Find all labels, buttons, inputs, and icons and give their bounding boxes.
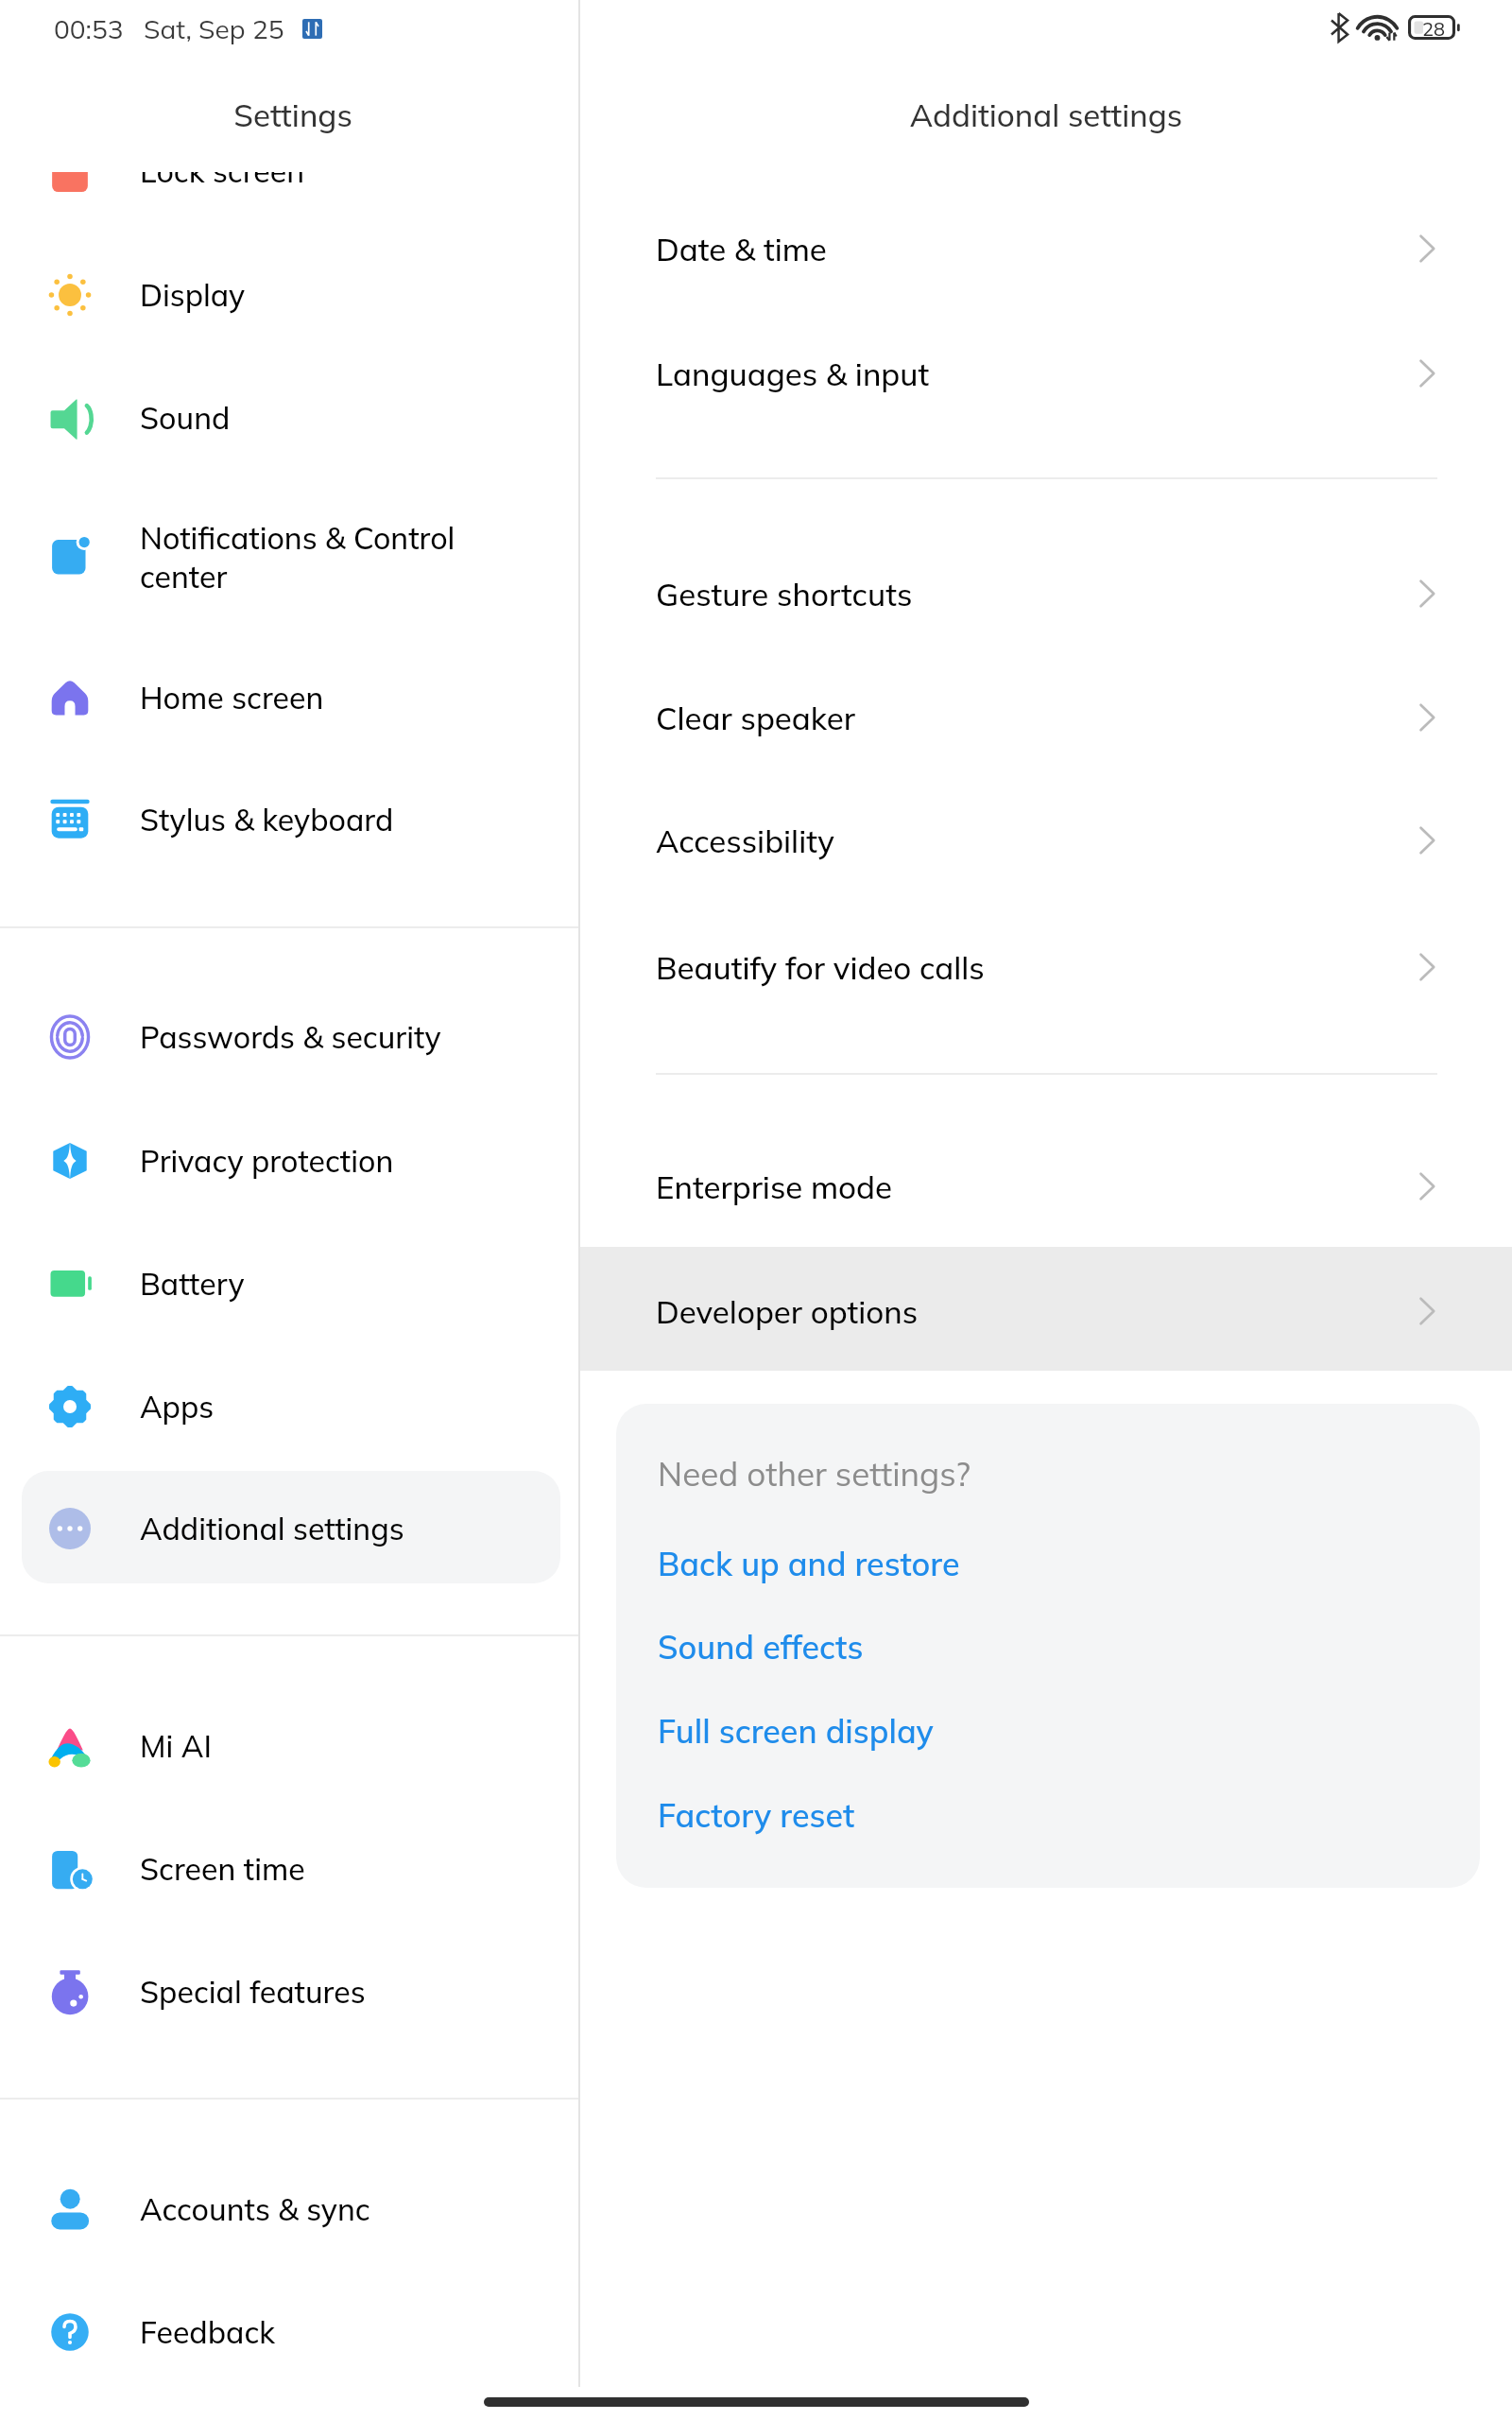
staticText: Sound	[140, 399, 231, 437]
staticText: Screen time	[140, 1850, 305, 1888]
button[interactable]: Clear speaker	[580, 658, 1512, 777]
staticText: Back up and restore	[658, 1544, 960, 1584]
staticText: Apps	[140, 1388, 215, 1426]
button[interactable]: Enterprise mode	[580, 1127, 1512, 1246]
button[interactable]: Beautify for video calls	[580, 907, 1512, 1027]
button[interactable]: Accessibility	[580, 781, 1512, 900]
staticText: 28	[1422, 17, 1445, 41]
button[interactable]: Apps	[0, 1351, 578, 1462]
button[interactable]: Stylus & keyboard	[0, 764, 578, 875]
staticText: Languages & input	[656, 354, 930, 393]
staticText: Passwords & security	[140, 1018, 441, 1056]
button[interactable]: Sound effects	[616, 1613, 1480, 1681]
staticText: Factory reset	[658, 1795, 855, 1836]
staticText: Enterprise mode	[656, 1167, 893, 1206]
staticText: Clear speaker	[656, 699, 855, 737]
button[interactable]: Additional settings	[0, 1473, 578, 1584]
staticText: Accessibility	[656, 821, 834, 860]
staticText: Notifications & Control center	[140, 519, 455, 596]
button[interactable]: Feedback	[0, 2276, 578, 2388]
staticText: Additional settings	[140, 1510, 404, 1547]
staticText: Mi AI	[140, 1727, 212, 1765]
staticText: Feedback	[140, 2313, 276, 2351]
other: Wi-Fi	[1361, 14, 1397, 41]
button[interactable]: Languages & input	[580, 314, 1512, 433]
button[interactable]: Gesture shortcuts	[580, 534, 1512, 653]
button[interactable]: Factory reset	[616, 1781, 1480, 1849]
staticText: Sat, Sep 25	[144, 12, 284, 45]
staticText: Sound effects	[658, 1627, 864, 1668]
button[interactable]: Sound	[0, 362, 578, 474]
staticText: Home screen	[140, 679, 324, 717]
button[interactable]: Back up and restore	[616, 1530, 1480, 1598]
staticText: Display	[140, 276, 246, 314]
button[interactable]: Full screen display	[616, 1697, 1480, 1765]
button[interactable]: Home screen	[0, 642, 578, 753]
button[interactable]: Mi AI	[0, 1690, 578, 1802]
button[interactable]: Display	[0, 239, 578, 351]
staticText: 00:53	[54, 12, 124, 45]
staticText: Battery	[140, 1265, 245, 1303]
button[interactable]: Accounts & sync	[0, 2153, 578, 2265]
staticText: Additional settings	[580, 95, 1512, 134]
staticText: Settings	[4, 95, 582, 134]
staticText: Beautify for video calls	[656, 948, 985, 987]
staticText: Privacy protection	[140, 1142, 394, 1180]
button[interactable]: Battery	[0, 1228, 578, 1340]
staticText: Special features	[140, 1973, 366, 2011]
button[interactable]: Privacy protection	[0, 1105, 578, 1217]
button[interactable]: Date & time	[580, 189, 1512, 308]
staticText: Accounts & sync	[140, 2190, 370, 2228]
staticText: Developer options	[656, 1292, 919, 1331]
button[interactable]: Notifications & Control center	[0, 501, 578, 613]
button[interactable]: Developer options	[580, 1252, 1512, 1371]
staticText: Date & time	[656, 230, 827, 268]
other: Battery 28 percent	[1408, 15, 1460, 40]
staticText: Full screen display	[658, 1711, 934, 1752]
staticText: Need other settings?	[658, 1453, 971, 1495]
staticText: Stylus & keyboard	[140, 801, 394, 838]
staticText: Lock screen	[140, 172, 305, 190]
button[interactable]: Screen time	[0, 1813, 578, 1925]
button[interactable]: Lock screen	[0, 172, 578, 227]
button[interactable]: Special features	[0, 1936, 578, 2048]
button[interactable]: Passwords & security	[0, 981, 578, 1093]
other: Bluetooth	[1331, 13, 1349, 42]
staticText: Gesture shortcuts	[656, 575, 913, 614]
